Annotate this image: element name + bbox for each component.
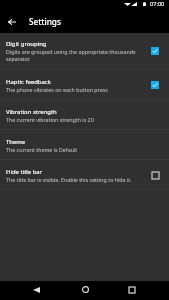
- staticText: 07:00: [150, 0, 165, 8]
- button[interactable]: Digit grouping: [0, 33, 169, 69]
- button[interactable]: Vibration strength: [0, 99, 169, 129]
- button[interactable]: Hide title bar: [148, 168, 162, 182]
- button[interactable]: Recent apps: [122, 280, 141, 299]
- staticText: The current vibration strength is 20: [6, 116, 94, 123]
- staticText: Vibration strength: [6, 108, 57, 116]
- button[interactable]: Home: [76, 280, 95, 299]
- button[interactable]: Digit grouping: [148, 44, 162, 58]
- button[interactable]: Theme: [0, 129, 169, 159]
- staticText: The phone vibrates on each button press: [6, 86, 108, 93]
- staticText: The current theme is Default: [6, 146, 78, 153]
- staticText: The title bar is visible. Enable this se…: [6, 176, 132, 183]
- button[interactable]: Haptic feedback: [0, 69, 169, 99]
- staticText: Haptic feedback: [6, 78, 51, 86]
- staticText: Digit grouping: [6, 40, 47, 48]
- button[interactable]: Back: [27, 280, 46, 299]
- button[interactable]: Navigate up: [0, 11, 24, 33]
- staticText: Hide title bar: [6, 168, 43, 176]
- staticText: Theme: [6, 138, 26, 146]
- button[interactable]: Hide title bar: [0, 159, 169, 189]
- staticText: Settings: [29, 16, 61, 27]
- button[interactable]: Haptic feedback: [148, 78, 162, 92]
- staticText: Digits are grouped using the appropriate…: [6, 48, 144, 62]
